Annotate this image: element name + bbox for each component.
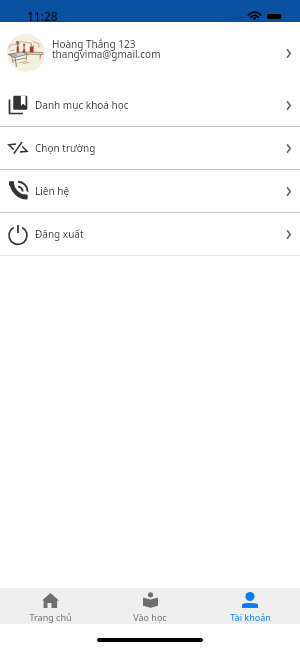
staticText: Danh mục khoá học	[35, 98, 129, 112]
button[interactable]: Đăng xuất	[0, 213, 300, 255]
staticText: Tài khoản	[230, 611, 271, 623]
staticText: Đăng xuất	[35, 227, 84, 241]
button[interactable]: Chọn trường	[0, 127, 300, 169]
button[interactable]: Danh mục khoá học	[0, 84, 300, 126]
button[interactable]: Vào học	[100, 588, 200, 624]
button[interactable]: Trang chủ	[0, 588, 100, 624]
staticText: Chọn trường	[35, 141, 96, 155]
staticText: Hoàng Thắng 123	[52, 37, 136, 51]
staticText: 11:28	[27, 8, 58, 24]
button[interactable]: Liên hệ	[0, 170, 300, 212]
button[interactable]: Tài khoản	[200, 588, 300, 624]
button[interactable]: Hoàng Thắng 123	[0, 22, 300, 84]
staticText: Trang chủ	[29, 611, 72, 623]
staticText: Liên hệ	[35, 184, 70, 198]
staticText: thangvima@gmail.com	[52, 47, 161, 61]
staticText: Vào học	[133, 611, 167, 623]
